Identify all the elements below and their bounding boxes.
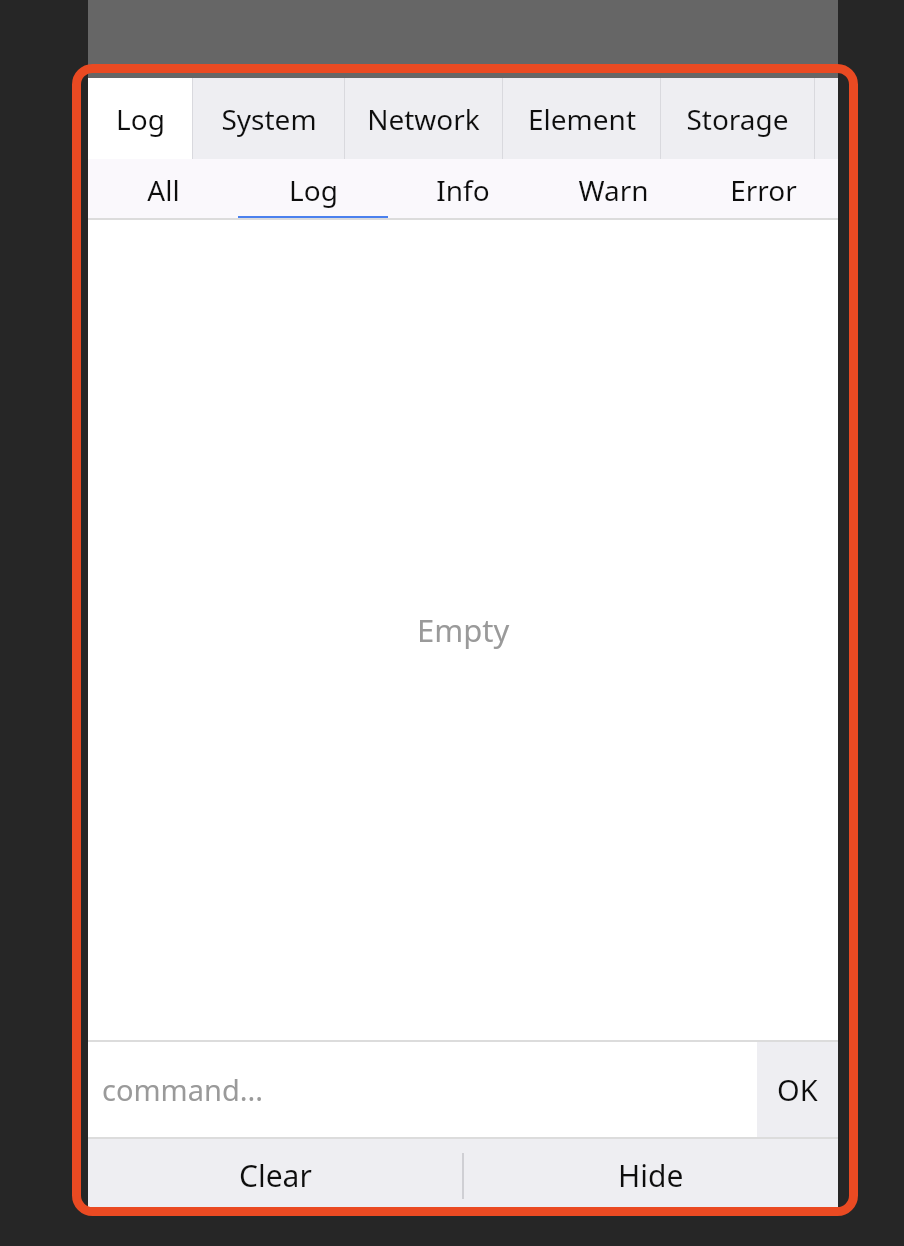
staticText: command... <box>102 1070 264 1109</box>
staticText: Error <box>730 171 797 209</box>
button[interactable]: Error <box>688 159 838 220</box>
staticText: Empty <box>417 609 510 651</box>
staticText: Hide <box>618 1155 684 1196</box>
button[interactable]: System <box>193 78 344 159</box>
staticText: Warn <box>578 171 649 209</box>
button[interactable]: Warn <box>538 159 688 220</box>
button[interactable]: Clear <box>88 1139 463 1212</box>
button[interactable]: OK <box>757 1042 838 1137</box>
staticText: Network <box>367 100 480 138</box>
staticText: Element <box>528 100 636 138</box>
staticText: Clear <box>239 1155 312 1196</box>
button[interactable]: Info <box>388 159 538 220</box>
button[interactable]: Element <box>503 78 660 159</box>
button[interactable]: command... <box>88 1042 757 1137</box>
staticText: All <box>147 171 180 209</box>
button[interactable]: Log <box>88 78 192 159</box>
button[interactable]: Hide <box>463 1139 838 1212</box>
staticText: System <box>221 100 317 138</box>
staticText: Log <box>116 100 165 138</box>
button[interactable]: Storage <box>661 78 814 159</box>
button[interactable]: Log <box>238 159 388 220</box>
button[interactable]: Network <box>345 78 502 159</box>
button[interactable]: All <box>88 159 238 220</box>
staticText: Info <box>436 171 490 209</box>
staticText: Log <box>289 171 338 209</box>
staticText: Storage <box>686 100 789 138</box>
staticText: OK <box>777 1070 818 1109</box>
